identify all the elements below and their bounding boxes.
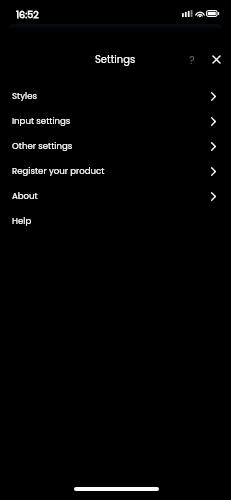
button[interactable]: Help [180, 48, 203, 71]
staticText: Other settings [12, 140, 73, 152]
button[interactable]: Close [205, 48, 228, 71]
button[interactable]: Styles [0, 83, 231, 108]
staticText: 16:52 [16, 8, 39, 21]
staticText: Settings [95, 52, 136, 66]
staticText: Help [12, 215, 32, 227]
button[interactable]: About [0, 183, 231, 208]
button[interactable]: Other settings [0, 133, 231, 158]
staticText: Register your product [12, 165, 105, 177]
staticText: About [12, 190, 38, 202]
button[interactable]: Help [0, 208, 231, 233]
staticText: Styles [12, 90, 37, 102]
button[interactable]: Register your product [0, 158, 231, 183]
button[interactable]: Input settings [0, 108, 231, 133]
staticText: Input settings [12, 115, 71, 127]
staticText: ? [189, 52, 195, 67]
